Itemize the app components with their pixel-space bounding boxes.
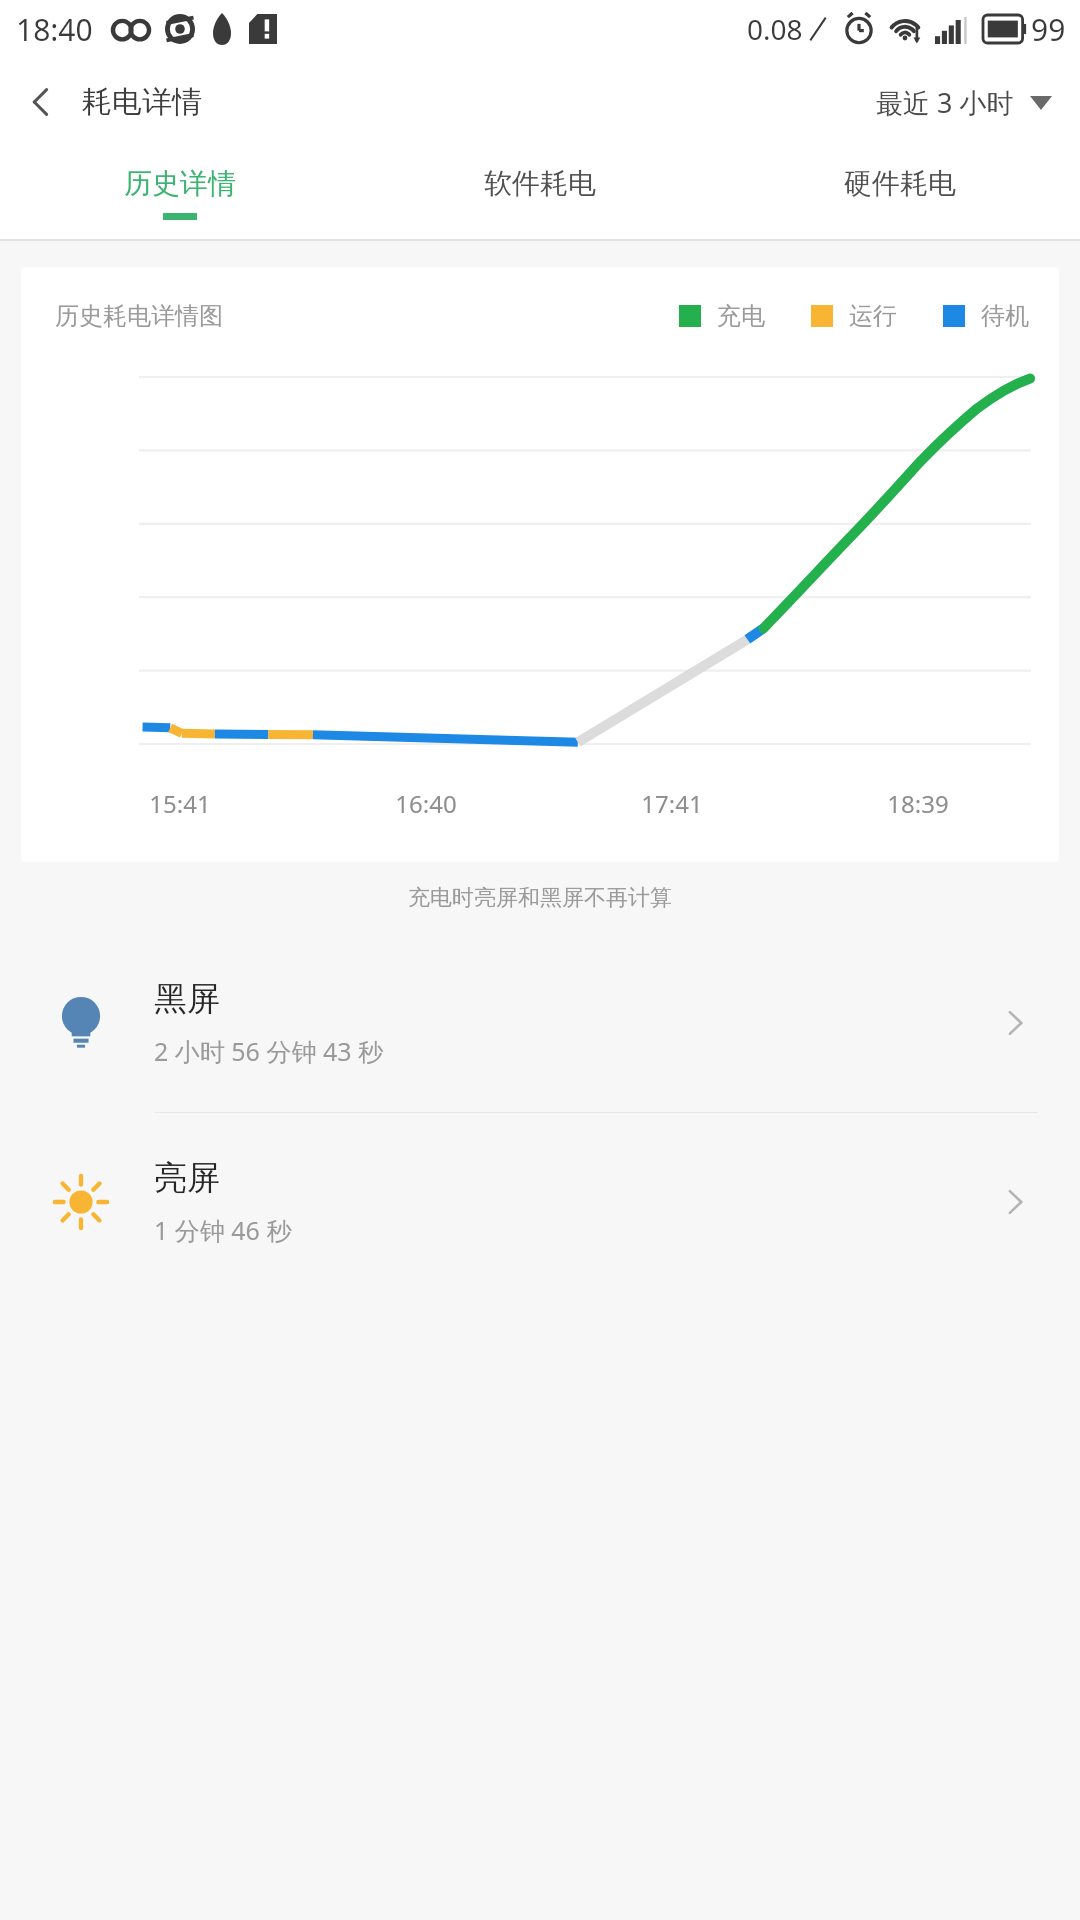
button[interactable]: Back: [0, 58, 82, 146]
button[interactable]: 历史详情: [0, 146, 360, 239]
staticText: 99: [1031, 9, 1066, 50]
staticText: 0.08: [747, 10, 803, 48]
staticText: 历史详情: [124, 166, 236, 201]
staticText: 15:41: [57, 787, 303, 820]
staticText: 2 小时 56 分钟 43 秒: [154, 1034, 384, 1068]
button[interactable]: 亮屏: [0, 1113, 1080, 1291]
button[interactable]: 硬件耗电: [720, 146, 1080, 239]
staticText: 18:39: [795, 787, 1041, 820]
button[interactable]: 最近 3 小时: [854, 68, 1080, 137]
staticText: 18:40: [16, 9, 93, 50]
staticText: 充电时亮屏和黑屏不再计算: [0, 884, 1080, 912]
staticText: 16:40: [303, 787, 549, 820]
staticText: 亮屏: [154, 1157, 220, 1199]
button[interactable]: 软件耗电: [360, 146, 720, 239]
staticText: 运行: [849, 301, 897, 331]
staticText: 17:41: [549, 787, 795, 820]
staticText: 充电: [717, 301, 765, 331]
staticText: 历史耗电详情图: [55, 301, 223, 331]
button[interactable]: 黑屏: [0, 934, 1080, 1112]
staticText: 待机: [981, 301, 1029, 331]
staticText: 1 分钟 46 秒: [154, 1213, 292, 1247]
staticText: 硬件耗电: [844, 166, 956, 201]
staticText: 最近 3 小时: [876, 84, 1014, 121]
staticText: 软件耗电: [484, 166, 596, 201]
staticText: 黑屏: [154, 978, 220, 1020]
staticText: 耗电详情: [82, 83, 202, 121]
